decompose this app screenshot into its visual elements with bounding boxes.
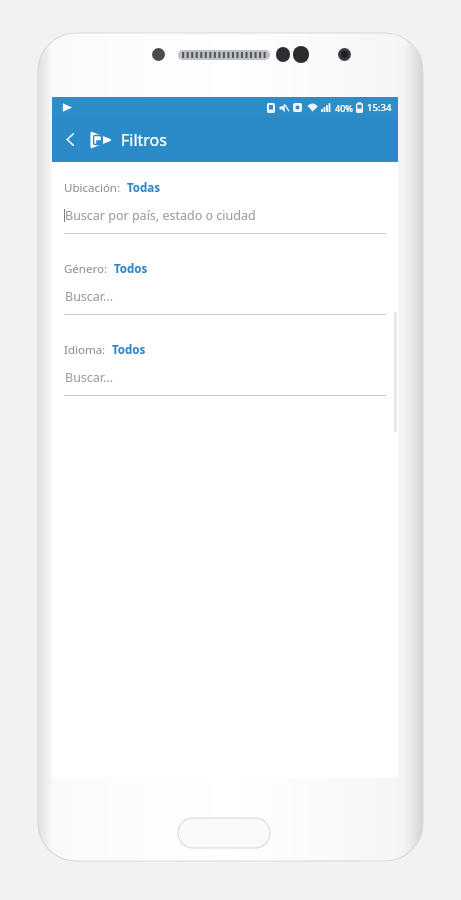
staticText: Género:	[64, 261, 108, 277]
button[interactable]: Home	[178, 818, 270, 848]
staticText: Buscar por país, estado o ciudad	[65, 207, 256, 224]
staticText: Buscar...	[65, 369, 114, 386]
staticText: Filtros	[121, 129, 167, 151]
button[interactable]: Ubicación:	[52, 180, 398, 234]
staticText: Ubicación:	[64, 180, 121, 196]
staticText: Todos	[112, 342, 146, 358]
button[interactable]: Género:	[52, 261, 398, 315]
staticText: Idioma:	[64, 342, 106, 358]
staticText: Todas	[127, 180, 160, 196]
button[interactable]: Back	[52, 117, 88, 162]
staticText: Todos	[114, 261, 148, 277]
staticText: 40%	[335, 102, 353, 114]
button[interactable]: Idioma:	[52, 342, 398, 396]
staticText: Buscar...	[65, 288, 114, 305]
staticText: 15:34	[367, 101, 392, 114]
